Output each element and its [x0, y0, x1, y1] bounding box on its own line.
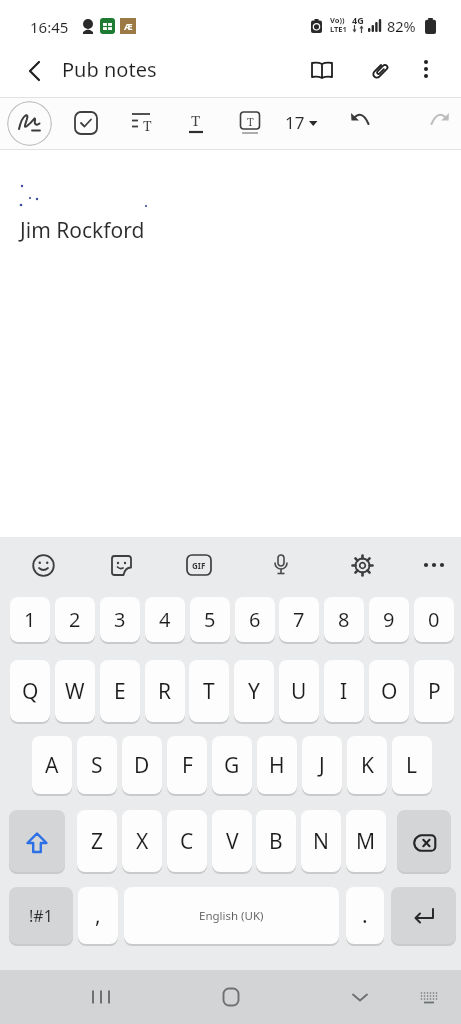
button[interactable]: ,: [78, 887, 118, 944]
button[interactable]: 7: [279, 597, 319, 642]
staticText: H: [269, 751, 285, 780]
button[interactable]: 0: [414, 597, 454, 642]
staticText: T: [191, 110, 201, 130]
button[interactable]: 3: [100, 597, 140, 642]
staticText: C: [180, 827, 194, 856]
button[interactable]: D: [122, 736, 162, 794]
staticText: R: [158, 677, 172, 706]
button[interactable]: English (UK): [124, 887, 339, 944]
staticText: English (UK): [199, 908, 264, 924]
staticText: 2: [69, 606, 81, 633]
staticText: A: [45, 751, 59, 780]
button[interactable]: M: [346, 810, 386, 872]
button[interactable]: [302, 51, 342, 91]
button[interactable]: C: [167, 810, 207, 872]
staticText: M: [356, 827, 376, 856]
staticText: T: [203, 677, 215, 706]
button[interactable]: [411, 980, 447, 1016]
button[interactable]: L: [392, 736, 432, 794]
button[interactable]: T: [230, 103, 270, 143]
button[interactable]: W: [55, 660, 95, 722]
staticText: 7: [293, 606, 305, 633]
button[interactable]: [360, 51, 400, 91]
button[interactable]: F: [167, 736, 207, 794]
button[interactable]: E: [100, 660, 140, 722]
staticText: !#1: [29, 905, 53, 927]
button[interactable]: N: [301, 810, 341, 872]
button[interactable]: B: [256, 810, 296, 872]
button[interactable]: G: [212, 736, 252, 794]
button[interactable]: 5: [190, 597, 230, 642]
button[interactable]: .: [346, 887, 384, 944]
button[interactable]: J: [302, 736, 342, 794]
staticText: 5: [204, 606, 216, 633]
staticText: 1: [24, 606, 36, 633]
button[interactable]: [9, 810, 65, 872]
button[interactable]: T: [121, 103, 161, 143]
button[interactable]: V: [212, 810, 252, 872]
button[interactable]: [16, 51, 56, 91]
staticText: T: [143, 116, 152, 135]
button[interactable]: [343, 546, 381, 584]
button[interactable]: S: [77, 736, 117, 794]
button[interactable]: Y: [234, 660, 274, 722]
button[interactable]: K: [347, 736, 387, 794]
staticText: B: [269, 827, 283, 856]
staticText: N: [313, 827, 329, 856]
staticText: X: [136, 827, 149, 856]
staticText: Pub notes: [62, 56, 157, 83]
staticText: .: [362, 901, 368, 930]
button[interactable]: 1: [10, 597, 50, 642]
staticText: GIF: [192, 560, 206, 571]
staticText: K: [361, 751, 374, 780]
button[interactable]: I: [324, 660, 364, 722]
button[interactable]: !#1: [9, 887, 73, 944]
staticText: T: [247, 114, 254, 129]
staticText: J: [319, 751, 325, 780]
button[interactable]: R: [145, 660, 185, 722]
button[interactable]: H: [257, 736, 297, 794]
staticText: LTE1: [330, 24, 347, 34]
staticText: D: [134, 751, 150, 780]
staticText: S: [91, 751, 103, 780]
staticText: I: [340, 677, 348, 706]
button[interactable]: U: [279, 660, 319, 722]
button[interactable]: P: [414, 660, 454, 722]
button[interactable]: [102, 546, 140, 584]
button[interactable]: Z: [77, 810, 117, 872]
button[interactable]: 17: [282, 103, 328, 143]
button[interactable]: 2: [55, 597, 95, 642]
button[interactable]: [397, 810, 451, 872]
staticText: O: [381, 677, 398, 706]
button[interactable]: T: [189, 660, 229, 722]
button[interactable]: GIF: [180, 546, 218, 584]
button[interactable]: [415, 546, 453, 584]
button[interactable]: [408, 51, 444, 87]
staticText: Vo)): [330, 15, 345, 25]
button[interactable]: [24, 546, 62, 584]
button[interactable]: [341, 103, 381, 143]
button[interactable]: [7, 101, 52, 146]
button[interactable]: T: [176, 103, 216, 143]
staticText: 6: [249, 606, 261, 633]
button[interactable]: [66, 103, 106, 143]
button[interactable]: 6: [235, 597, 275, 642]
button[interactable]: [262, 546, 300, 584]
button[interactable]: 9: [369, 597, 409, 642]
staticText: Z: [91, 827, 104, 856]
button[interactable]: Q: [10, 660, 50, 722]
button[interactable]: 4: [145, 597, 185, 642]
button[interactable]: 8: [324, 597, 364, 642]
button[interactable]: [211, 977, 251, 1017]
staticText: G: [224, 751, 240, 780]
staticText: 3: [114, 606, 126, 633]
button[interactable]: [340, 977, 380, 1017]
staticText: 9: [383, 606, 395, 633]
button[interactable]: X: [122, 810, 162, 872]
button[interactable]: [81, 977, 121, 1017]
button[interactable]: A: [32, 736, 72, 794]
button[interactable]: [391, 887, 456, 944]
button[interactable]: [419, 103, 459, 143]
button[interactable]: O: [369, 660, 409, 722]
staticText: 4G: [352, 14, 364, 26]
